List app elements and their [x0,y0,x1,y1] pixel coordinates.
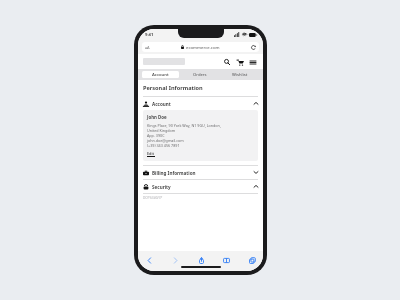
button[interactable]: Search [222,57,232,67]
button[interactable]: Share [195,254,207,266]
button[interactable]: Billing Information [143,166,258,179]
button[interactable]: Account [142,71,179,78]
button[interactable]: Menu [248,57,258,67]
button[interactable]: Tabs [246,254,258,266]
button[interactable]: Cart [235,57,245,67]
button[interactable]: Forward [169,254,181,266]
staticText: ᴀA [145,45,150,50]
staticText: Security [152,184,171,190]
button[interactable]: Edit [147,151,155,157]
staticText: Kings Place, 90 York Way, N1 9GU, London… [147,123,221,128]
button[interactable]: Orders [181,71,219,78]
button[interactable]: Back [143,254,155,266]
staticText: Account [152,72,169,78]
staticText: App. 390C [147,133,165,138]
staticText: Orders [193,72,207,78]
staticText: ecommerce.com [186,44,220,50]
staticText: Billing Information [152,170,196,176]
staticText: DO?%3#0/3* [143,196,163,200]
button[interactable]: Security [143,180,258,193]
staticText: Edit [147,151,155,156]
staticText: Personal Information [143,84,203,92]
staticText: Account [152,101,171,107]
staticText: 9:41 [145,32,154,38]
staticText: Wishlist [232,72,248,78]
button[interactable]: Account [143,97,258,110]
staticText: United Kingdom [147,128,176,133]
staticText: john.doe@gmail.com [147,138,184,143]
button[interactable]: Wishlist [221,71,259,78]
staticText: John Doe [147,114,167,120]
button[interactable]: Bookmarks [220,254,232,266]
staticText: (+39) 343 456 7891 [147,143,180,148]
